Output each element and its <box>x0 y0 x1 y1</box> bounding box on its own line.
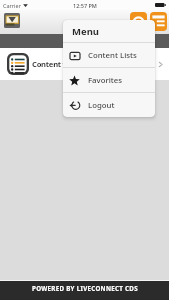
button[interactable]: App logo <box>4 13 20 28</box>
staticText: Menu <box>72 25 99 38</box>
button[interactable]: Content Lists <box>63 43 155 67</box>
staticText: Favorites <box>88 75 123 86</box>
button[interactable]: Logout <box>63 93 155 117</box>
button[interactable]: Account <box>129 12 147 31</box>
button[interactable]: Favorites <box>63 68 155 92</box>
staticText: 12:57 PM <box>73 2 97 9</box>
button[interactable]: Menu <box>149 12 167 31</box>
button[interactable]: Content from Channel <box>0 48 169 80</box>
staticText: Logout <box>88 100 115 111</box>
staticText: Content Lists <box>88 50 137 61</box>
staticText: Carrier <box>3 2 21 9</box>
staticText: POWERED BY LIVECONNECT CDS <box>32 284 138 292</box>
staticText: Content from Channel <box>32 59 111 69</box>
